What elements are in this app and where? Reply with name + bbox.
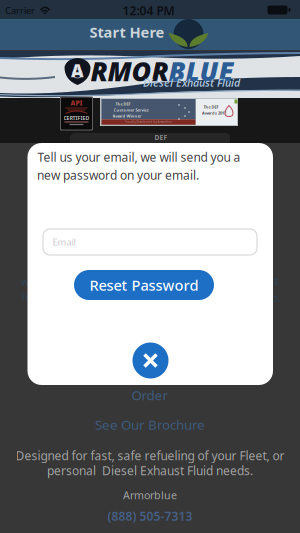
button[interactable]: (888) 505-7313 [107, 508, 192, 524]
staticText: (888) 505-7313 [107, 508, 192, 524]
button[interactable]: Order [131, 386, 168, 404]
staticText: w [21, 274, 29, 289]
staticText: The DEF [203, 104, 218, 110]
staticText: See Our Brochure [95, 416, 205, 433]
staticText: CERTIFIED [63, 114, 89, 122]
staticText: Awards 2017 [202, 110, 226, 116]
staticText: o. [271, 290, 280, 305]
staticText: The DEF [115, 101, 130, 107]
staticText: Start Here [89, 22, 164, 42]
staticText: t [274, 274, 278, 288]
staticText: Proudly Distributed by Armorblue [124, 120, 172, 124]
staticText: h [21, 290, 28, 304]
staticText: Award Winner [112, 113, 141, 119]
staticText: RMOR [90, 53, 168, 89]
staticText: Designed for fast, safe refueling of you… [15, 447, 284, 463]
staticText: DEF [154, 133, 167, 142]
staticText: Diesel Exhaust Fluid [143, 75, 240, 90]
staticText: Email [52, 236, 75, 248]
staticText: 12:04 PM [122, 2, 174, 18]
staticText: BLUE [168, 53, 233, 89]
staticText: Armorblue [123, 488, 177, 502]
staticText: Carrier [5, 4, 35, 17]
staticText: new password on your email. [37, 167, 199, 183]
button[interactable]: See Our Brochure [95, 416, 205, 433]
staticText: Reset Password [89, 275, 198, 295]
staticText: personal Diesel Exhaust Fluid needs. [47, 462, 253, 478]
staticText: API [70, 99, 82, 107]
button[interactable]: Close [132, 342, 168, 378]
staticText: A [71, 59, 84, 82]
staticText: Tell us your email, we will send you a [37, 149, 240, 165]
staticText: Order [131, 386, 168, 404]
staticText: Customer Service [113, 107, 148, 113]
button[interactable]: Reset Password [74, 270, 214, 300]
button[interactable]: Email [43, 229, 257, 255]
